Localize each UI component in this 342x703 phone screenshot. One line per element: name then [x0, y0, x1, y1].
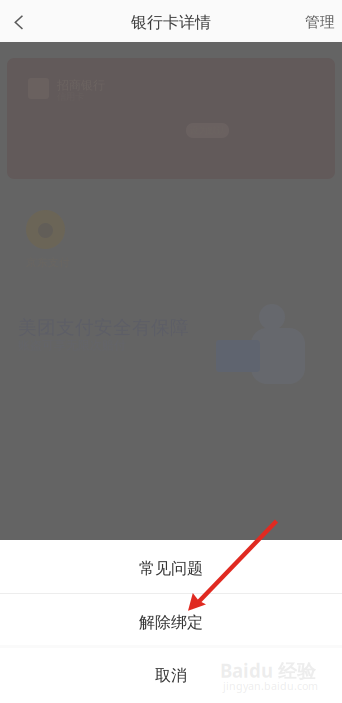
- staticText: 常见问题: [139, 559, 203, 578]
- button[interactable]: 常见问题: [0, 540, 342, 593]
- staticText: Baidu 经验: [220, 658, 316, 683]
- button[interactable]: 管理: [296, 1, 342, 43]
- staticText: 管理: [305, 13, 335, 31]
- staticText: 银行卡详情: [131, 13, 211, 32]
- staticText: 取消: [155, 666, 187, 685]
- button[interactable]: 取消: [0, 648, 342, 703]
- button[interactable]: Back: [0, 0, 38, 42]
- staticText: jingyan.baidu.com: [223, 679, 318, 693]
- button[interactable]: 解除绑定: [0, 594, 342, 645]
- staticText: 解除绑定: [139, 613, 203, 632]
